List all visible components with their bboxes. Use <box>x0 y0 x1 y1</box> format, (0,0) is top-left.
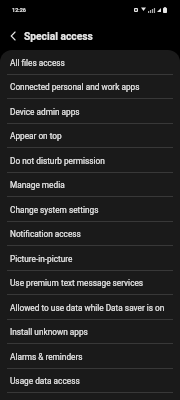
button[interactable]: Device admin apps <box>0 99 180 123</box>
button[interactable]: Change system settings <box>0 197 180 221</box>
staticText: Install unknown apps <box>10 327 88 337</box>
button[interactable]: All files access <box>0 50 180 74</box>
staticText: Device admin apps <box>10 107 80 117</box>
staticText: Use premium text message services <box>10 278 144 288</box>
staticText: Special access <box>24 30 93 42</box>
button[interactable]: Do not disturb permission <box>0 148 180 172</box>
button[interactable]: Appear on top <box>0 123 180 147</box>
staticText: Notification access <box>10 229 81 239</box>
button[interactable]: Notification access <box>0 221 180 245</box>
staticText: Manage media <box>10 180 65 190</box>
staticText: Picture-in-picture <box>10 254 73 264</box>
button[interactable]: Manage media <box>0 172 180 196</box>
staticText: Appear on top <box>10 131 62 141</box>
staticText: 12:26 <box>12 7 26 13</box>
button[interactable]: Connected personal and work apps <box>0 74 180 98</box>
button[interactable]: Install unknown apps <box>0 319 180 343</box>
staticText: Change system settings <box>10 205 99 215</box>
staticText: All files access <box>10 58 65 68</box>
button[interactable]: Allowed to use data while Data saver is … <box>0 295 180 319</box>
button[interactable]: Navigate up <box>4 27 22 45</box>
button[interactable]: Picture-in-picture <box>0 246 180 270</box>
button[interactable]: Use premium text message services <box>0 270 180 294</box>
staticText: Alarms & reminders <box>10 352 83 362</box>
button[interactable]: Usage data access <box>0 368 180 392</box>
button[interactable]: Alarms & reminders <box>0 344 180 368</box>
staticText: Connected personal and work apps <box>10 82 140 92</box>
staticText: Do not disturb permission <box>10 156 105 166</box>
staticText: Allowed to use data while Data saver is … <box>10 303 165 313</box>
staticText: Usage data access <box>10 376 80 386</box>
